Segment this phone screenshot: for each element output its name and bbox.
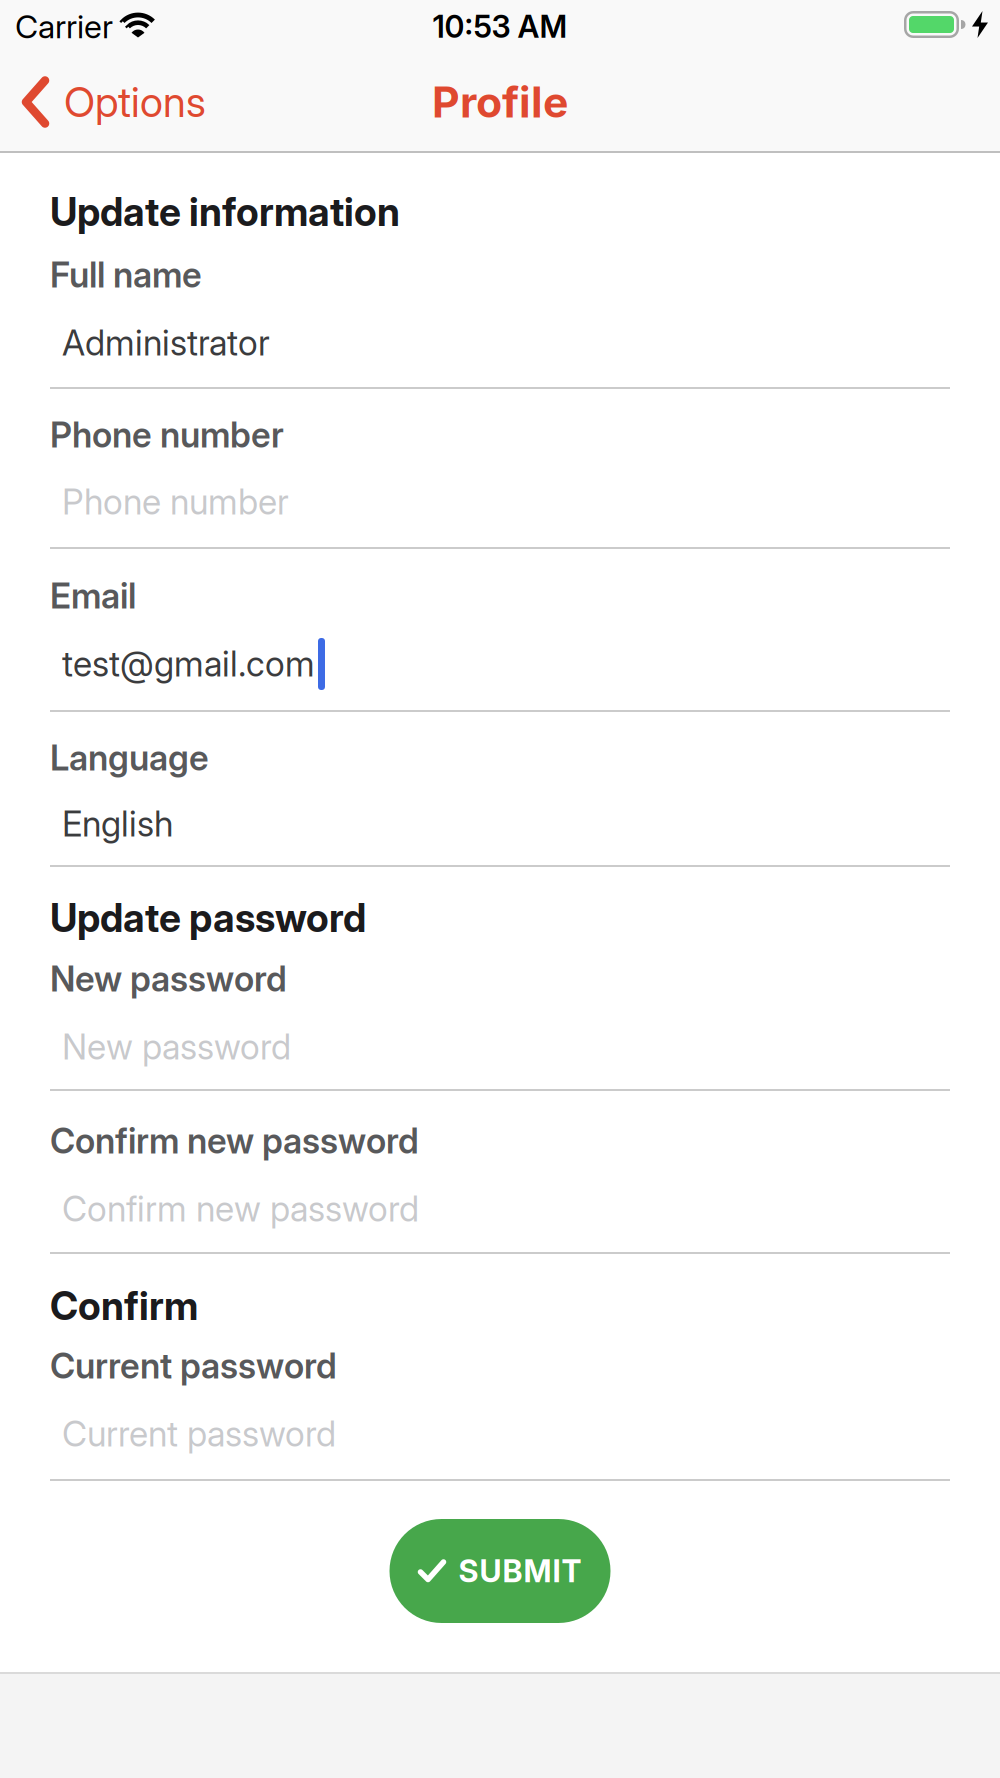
staticText: Update information xyxy=(50,189,400,235)
staticText: Profile xyxy=(432,77,568,127)
staticText: New password xyxy=(62,1027,291,1067)
staticText: SUBMIT xyxy=(458,1553,581,1589)
staticText: Administrator xyxy=(62,323,270,363)
staticText: Confirm new password xyxy=(50,1121,419,1161)
staticText: Current password xyxy=(50,1346,337,1386)
staticText: Confirm xyxy=(50,1283,198,1329)
staticText: Phone number xyxy=(50,415,284,455)
staticText: Email xyxy=(50,576,136,616)
staticText: 10:53 AM xyxy=(432,8,567,45)
button[interactable]: SUBMIT xyxy=(389,1519,610,1623)
staticText: Language xyxy=(50,738,209,778)
button[interactable]: Options xyxy=(0,78,206,126)
staticText: Current password xyxy=(62,1414,336,1454)
staticText: Options xyxy=(64,78,206,126)
staticText: Full name xyxy=(50,255,202,295)
staticText: Update password xyxy=(50,895,366,941)
staticText: Carrier xyxy=(15,8,113,45)
staticText: Phone number xyxy=(62,482,289,522)
staticText: Confirm new password xyxy=(62,1189,419,1229)
staticText: English xyxy=(62,804,173,844)
staticText: test@gmail.com xyxy=(62,644,315,684)
staticText: New password xyxy=(50,959,287,999)
